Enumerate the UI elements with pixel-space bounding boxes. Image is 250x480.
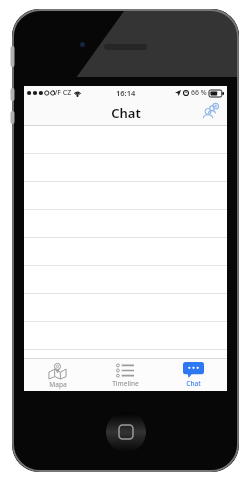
button[interactable]: [24, 294, 227, 322]
button[interactable]: [24, 238, 227, 266]
staticText: VF CZ: [53, 88, 72, 98]
button[interactable]: [24, 266, 227, 294]
button[interactable]: [24, 210, 227, 238]
button[interactable]: [24, 126, 227, 154]
staticText: 16:14: [116, 88, 136, 98]
button[interactable]: Mapa: [24, 359, 91, 391]
button[interactable]: [24, 182, 227, 210]
staticText: Mapa: [49, 380, 67, 389]
button[interactable]: [24, 322, 227, 350]
button[interactable]: Home button: [106, 412, 146, 452]
staticText: Timeline: [112, 379, 139, 388]
button[interactable]: Chat: [159, 359, 227, 391]
button[interactable]: Add people: [198, 101, 222, 125]
staticText: Chat: [111, 104, 141, 122]
staticText: 66 %: [191, 88, 207, 98]
button[interactable]: [24, 154, 227, 182]
staticText: Chat: [186, 379, 201, 388]
button[interactable]: Timeline: [91, 359, 159, 391]
